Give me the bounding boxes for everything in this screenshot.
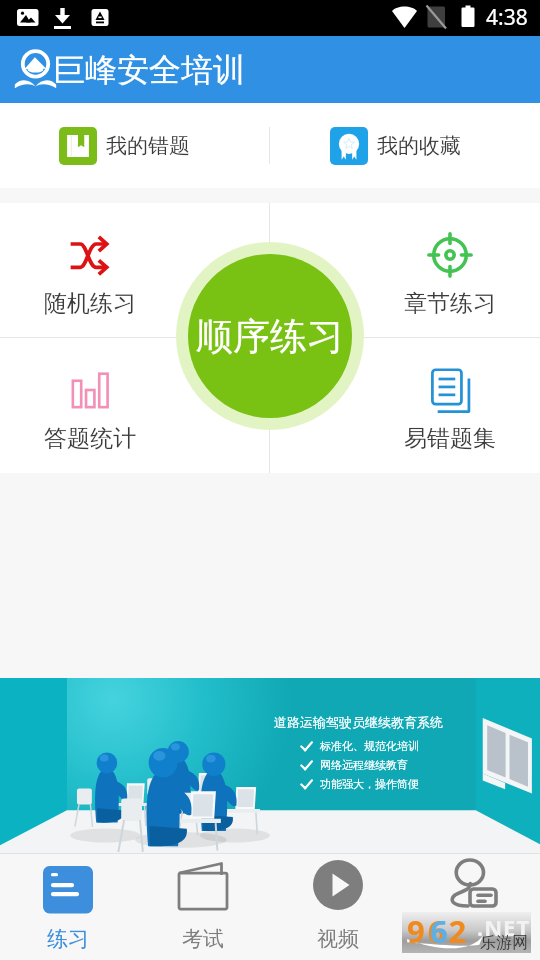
staticText: 章节练习 bbox=[404, 289, 496, 318]
staticText: 我的收藏 bbox=[377, 133, 461, 159]
button[interactable]: 顺序练习 bbox=[188, 254, 352, 418]
staticText: 易错题集 bbox=[404, 424, 496, 453]
staticText: 乐游网 bbox=[480, 933, 528, 953]
button[interactable]: Profile bbox=[405, 854, 540, 960]
staticText: 962 bbox=[407, 910, 470, 951]
other: Video bbox=[313, 860, 363, 910]
staticText: 随机练习 bbox=[44, 289, 136, 318]
staticText: 我的错题 bbox=[106, 133, 190, 159]
staticText: 练习 bbox=[47, 926, 89, 952]
staticText: 考试 bbox=[182, 926, 224, 952]
staticText: 答题统计 bbox=[44, 424, 136, 453]
button[interactable]: 易错题集 bbox=[270, 338, 540, 473]
button[interactable]: 我的错题 bbox=[0, 103, 269, 188]
staticText: 我的 bbox=[452, 926, 494, 952]
button[interactable]: 章节练习 bbox=[270, 203, 540, 337]
button[interactable]: 答题统计 bbox=[0, 338, 269, 473]
staticText: 道路运输驾驶员继续教育系统 bbox=[274, 714, 443, 730]
staticText: .NET bbox=[477, 912, 531, 942]
staticText: 4:38 bbox=[486, 3, 528, 32]
button[interactable]: Practice bbox=[0, 854, 135, 960]
staticText: 标准化、规范化培训 bbox=[320, 739, 419, 753]
other: Practice bbox=[43, 860, 93, 910]
button[interactable]: 随机练习 bbox=[0, 203, 269, 337]
other: Profile bbox=[448, 860, 498, 910]
staticText: 巨峰安全培训 bbox=[53, 50, 245, 90]
staticText: 网络远程继续教育 bbox=[320, 758, 408, 772]
button[interactable]: Exam bbox=[135, 854, 270, 960]
staticText: 6 bbox=[430, 910, 448, 951]
other: Exam bbox=[178, 860, 228, 910]
button[interactable]: Video bbox=[270, 854, 405, 960]
staticText: 视频 bbox=[317, 926, 359, 952]
staticText: 顺序练习 bbox=[196, 313, 344, 360]
button[interactable]: 我的收藏 bbox=[270, 103, 540, 188]
staticText: 功能强大，操作简便 bbox=[320, 777, 419, 791]
